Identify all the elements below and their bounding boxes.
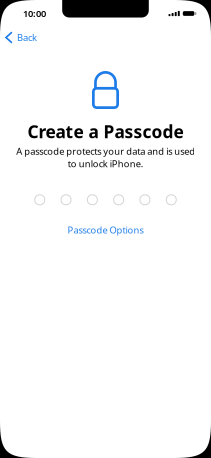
staticText: Passcode Options	[67, 224, 143, 236]
staticText: Create a Passcode	[27, 120, 183, 143]
staticText: Back	[17, 31, 37, 44]
staticText: 10:00	[23, 7, 46, 20]
button[interactable]: Back	[0, 28, 37, 47]
staticText: A passcode protects your data and is use…	[16, 145, 195, 170]
button[interactable]: Passcode Options	[59, 221, 151, 239]
